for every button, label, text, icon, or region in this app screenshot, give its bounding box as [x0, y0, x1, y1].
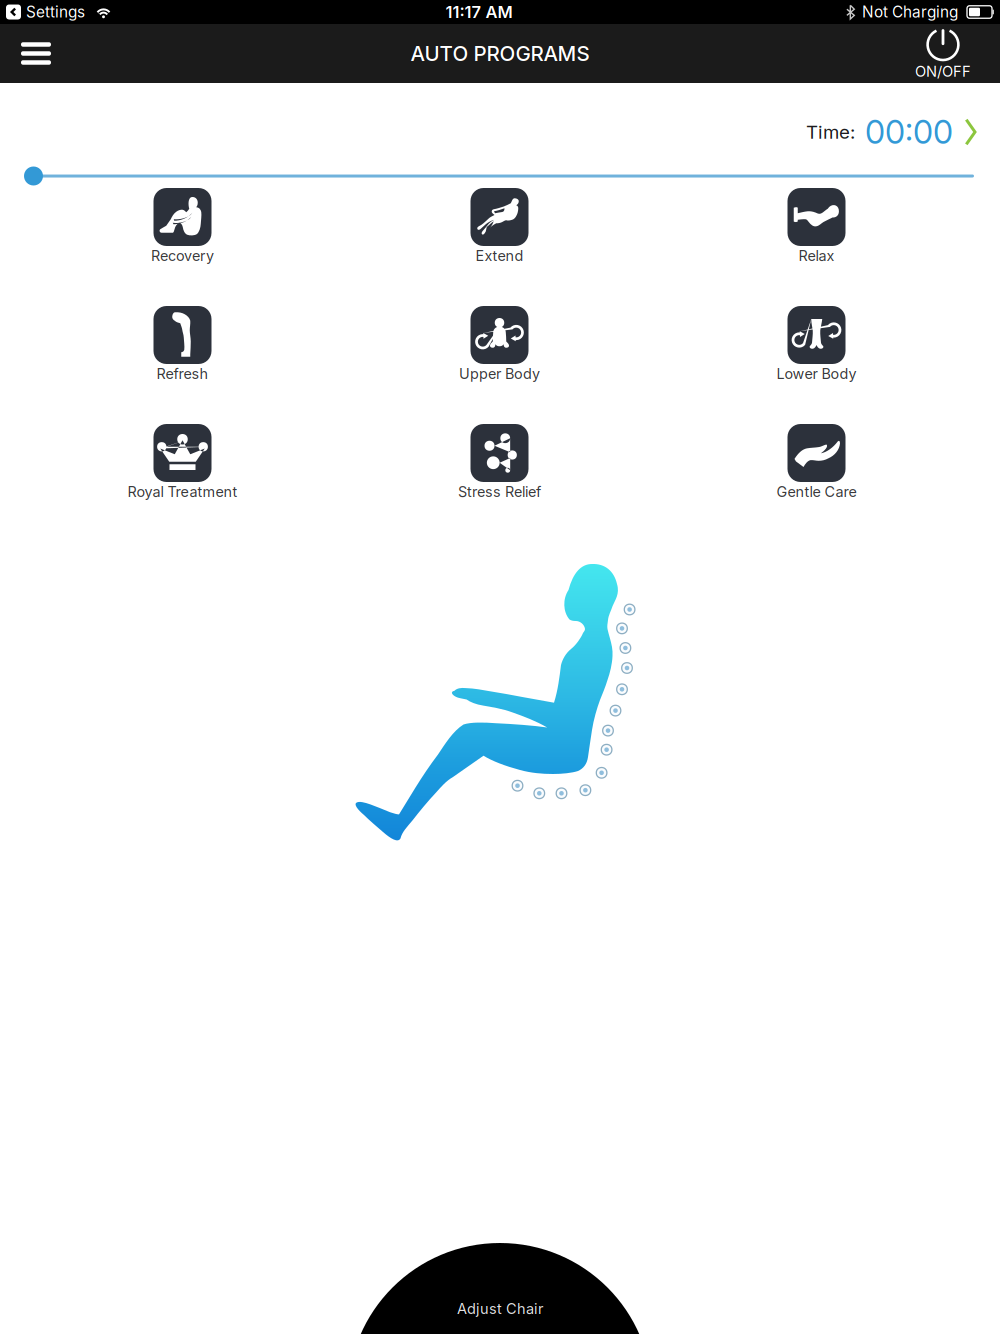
staticText: Relax [798, 247, 834, 264]
staticText: Royal Treatment [127, 483, 237, 500]
staticText: Adjust Chair [457, 1300, 543, 1318]
button[interactable]: Extend [341, 188, 658, 306]
staticText: Upper Body [459, 365, 540, 382]
staticText: Stress Relief [458, 483, 541, 500]
staticText: Time: [806, 121, 855, 143]
button[interactable]: Menu [8, 24, 64, 83]
button[interactable]: Upper Body [341, 306, 658, 424]
staticText: Refresh [156, 365, 208, 382]
button[interactable]: Lower Body [658, 306, 975, 424]
button[interactable]: Power On Off [900, 27, 986, 80]
staticText: 11:17 AM [445, 2, 512, 22]
button[interactable]: Relax [658, 188, 975, 306]
button[interactable]: Settings [6, 3, 85, 21]
button[interactable]: Recovery [24, 188, 341, 306]
staticText: 00:00 [865, 112, 953, 151]
staticText: Extend [475, 247, 523, 264]
staticText: Not Charging [862, 3, 958, 21]
staticText: Gentle Care [776, 483, 856, 500]
button[interactable]: Adjust Chair [348, 1243, 652, 1334]
button[interactable]: Refresh [24, 306, 341, 424]
staticText: Recovery [151, 247, 214, 264]
button[interactable]: Stress Relief [341, 424, 658, 534]
staticText: Settings [26, 3, 85, 21]
button[interactable]: Time: [0, 100, 1000, 164]
staticText: ON/OFF [915, 63, 971, 80]
staticText: AUTO PROGRAMS [410, 41, 589, 66]
button[interactable]: Royal Treatment [24, 424, 341, 534]
button[interactable]: Gentle Care [658, 424, 975, 534]
staticText: Lower Body [776, 365, 856, 382]
